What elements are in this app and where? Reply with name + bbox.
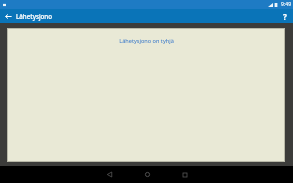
button[interactable]: Lähetysjono on tyhjä bbox=[119, 37, 174, 45]
staticText: 9:49 bbox=[281, 1, 291, 8]
button[interactable]: Back bbox=[0, 9, 16, 23]
button[interactable]: Help bbox=[277, 9, 293, 23]
staticText: ? bbox=[283, 11, 287, 22]
button[interactable]: Recent apps bbox=[170, 166, 200, 183]
staticText: Lähetysjono bbox=[16, 12, 277, 20]
staticText: Lähetysjono on tyhjä bbox=[119, 37, 174, 45]
button[interactable]: Back bbox=[94, 166, 124, 183]
button[interactable]: Home bbox=[132, 166, 162, 183]
